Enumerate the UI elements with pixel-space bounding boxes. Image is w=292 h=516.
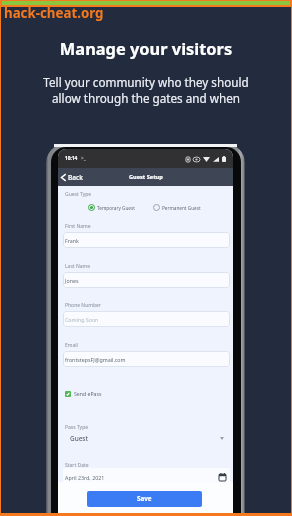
- button[interactable]: Coming Soon: [63, 311, 230, 327]
- staticText: Temporary Guest: [97, 205, 135, 211]
- staticText: Back: [68, 173, 84, 182]
- staticText: Pass Type: [65, 424, 89, 431]
- staticText: Tell your community who they should allo…: [0, 74, 292, 107]
- staticText: First Name: [65, 223, 91, 230]
- button[interactable]: Jones: [63, 272, 230, 288]
- staticText: hack-cheat.org: [4, 4, 104, 22]
- button[interactable]: Frank: [63, 232, 230, 248]
- staticText: Save: [137, 494, 152, 503]
- staticText: Guest: [70, 434, 88, 443]
- staticText: >_: [81, 155, 86, 162]
- staticText: Email: [65, 342, 78, 349]
- staticText: Jones: [65, 277, 79, 284]
- staticText: Send ePass: [74, 390, 102, 397]
- staticText: Manage your visitors: [0, 37, 292, 59]
- button[interactable]: Send ePass: [63, 388, 104, 399]
- button[interactable]: frontstepsFJ@gmail.com: [63, 351, 230, 367]
- button[interactable]: April 23rd, 2021: [65, 473, 226, 481]
- button[interactable]: Back: [59, 171, 86, 184]
- staticText: frontstepsFJ@gmail.com: [65, 356, 126, 363]
- staticText: Frank: [65, 237, 79, 244]
- button[interactable]: Permanent Guest: [152, 203, 202, 212]
- staticText: Guest Type: [65, 191, 92, 198]
- staticText: Start Date: [65, 462, 89, 469]
- other: Pick a date: [219, 473, 226, 481]
- button[interactable]: Save: [87, 491, 202, 507]
- button[interactable]: Temporary Guest: [87, 203, 136, 212]
- button[interactable]: Guest: [70, 434, 224, 443]
- staticText: Permanent Guest: [162, 205, 201, 211]
- staticText: Phone Number: [65, 302, 101, 309]
- staticText: April 23rd, 2021: [65, 474, 105, 481]
- staticText: Last Name: [65, 263, 91, 270]
- staticText: Coming Soon: [65, 316, 99, 323]
- staticText: Guest Setup: [129, 173, 163, 181]
- staticText: 10:14: [65, 155, 78, 162]
